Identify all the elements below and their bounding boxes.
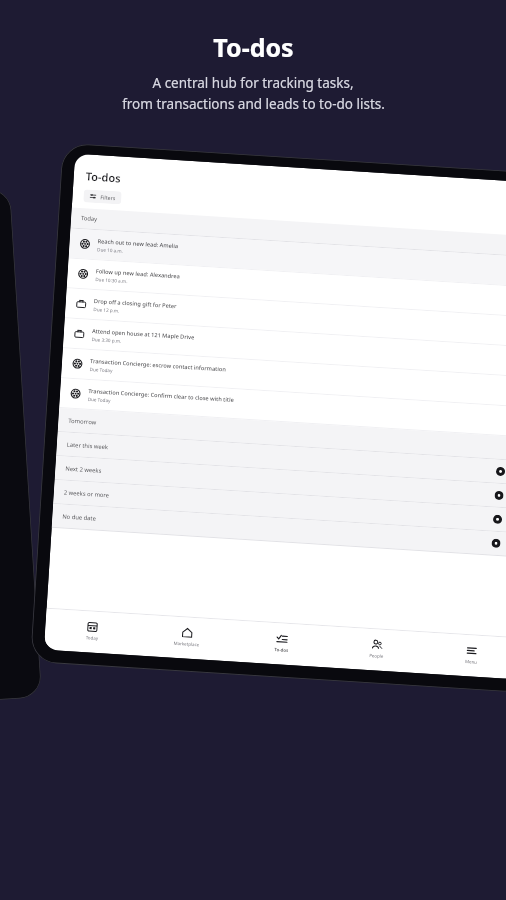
staticText: 2 weeks or more [64,489,493,524]
staticText: Menu [465,658,477,665]
staticText: People [369,652,384,659]
staticText: No due date [62,512,492,547]
other: Count [494,491,504,500]
staticText: Tomorrow [68,417,506,453]
staticText: Attend open house at 121 Maple Drive [92,327,195,341]
button[interactable]: Tomorrow [58,408,506,461]
staticText: Due 12 p.m. [93,306,121,314]
staticText: To-dos [274,646,289,653]
button[interactable]: Marketplace [155,621,219,652]
other: Marketplace [181,626,194,639]
staticText: Today [81,214,98,223]
button[interactable]: To-dos [250,627,314,658]
other: Menu [465,644,478,657]
button[interactable]: Filters [83,189,122,205]
button[interactable]: Transaction Concierge: Confirm clear to … [59,378,506,437]
other: Count [493,515,502,524]
staticText: To-dos [85,168,121,185]
staticText: Due Today [88,396,111,403]
button[interactable]: Next 2 weeks [55,456,506,509]
button[interactable]: Today [70,207,506,257]
staticText: Follow up new lead: Alexandrea [96,267,181,280]
staticText: Drop off a closing gift for Peter [94,297,177,310]
button[interactable]: Today [60,615,124,646]
staticText: from transactions and leads to to-do lis… [122,95,385,113]
button[interactable]: Attend open house at 121 Maple Drive [63,318,506,377]
button[interactable]: Transaction Concierge: escrow contact in… [61,348,506,407]
staticText: Due 3:30 p.m. [91,336,122,344]
button[interactable]: Follow up new lead: Alexandrea [67,258,506,317]
staticText: Marketplace [173,640,200,647]
staticText: Reach out to new lead: Amelia [97,237,179,250]
other: To-dos [276,632,288,645]
staticText: Next 2 weeks [65,465,495,500]
staticText: Due 10 a.m. [97,246,123,254]
button[interactable]: People [345,633,408,664]
staticText: Transaction Concierge: escrow contact in… [90,357,226,373]
button[interactable]: Menu [440,639,503,670]
button[interactable]: Drop off a closing gift for Peter [65,288,506,347]
other: Today [86,620,99,633]
staticText: Due Today [89,366,113,373]
staticText: Later this week [67,441,496,476]
staticText: Filters [100,193,116,201]
staticText: Due 10:30 a.m. [95,276,128,284]
other: Count [496,467,505,476]
button[interactable]: Reach out to new lead: Amelia [69,228,506,287]
other: People [371,638,383,651]
button[interactable]: No due date [52,504,506,557]
staticText: Transaction Concierge: Confirm clear to … [88,387,234,404]
staticText: A central hub for tracking tasks, [152,74,354,92]
staticText: Today [86,634,99,641]
button[interactable]: Later this week [56,432,506,485]
staticText: To-dos [213,30,294,64]
other: Count [491,538,501,548]
button[interactable]: 2 weeks or more [53,480,506,533]
